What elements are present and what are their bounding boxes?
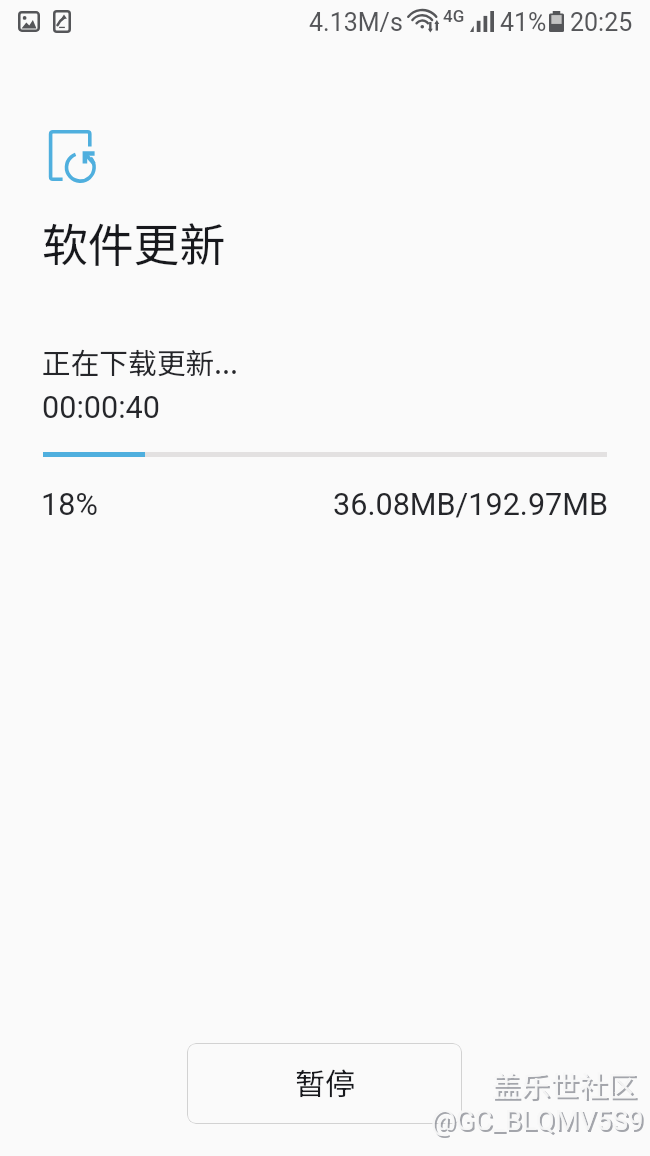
- staticText: 盖乐世社区: [494, 1065, 640, 1107]
- staticText: 00:00:40: [42, 390, 160, 426]
- staticText: 18%: [41, 487, 98, 523]
- staticText: @GC_BLQMV5S9: [433, 1106, 646, 1138]
- staticText: 4G: [443, 6, 465, 26]
- staticText: 盖乐世社区: [492, 1063, 638, 1105]
- staticText: 36.08MB/192.97MB: [333, 487, 609, 523]
- staticText: @GC_BLQMV5S9: [431, 1104, 644, 1136]
- other: Mobile signal: [470, 11, 494, 32]
- other: Scroll capture: [53, 10, 71, 33]
- button[interactable]: 暂停: [187, 1043, 462, 1124]
- staticText: 4.13M/s: [309, 8, 403, 37]
- staticText: 软件更新: [42, 209, 226, 275]
- other: Screenshot saved: [18, 11, 40, 32]
- staticText: 暂停: [295, 1060, 355, 1103]
- other: Battery 41 percent: [549, 11, 564, 32]
- other: Wi-Fi connected: [408, 9, 439, 33]
- staticText: 正在下载更新...: [42, 341, 239, 383]
- staticText: 41%: [500, 8, 547, 37]
- other: Software update: [38, 122, 102, 188]
- staticText: 20:25: [570, 8, 633, 37]
